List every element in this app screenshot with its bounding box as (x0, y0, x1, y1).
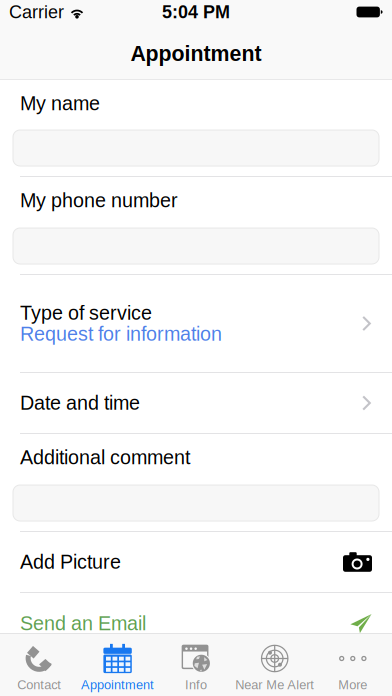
staticText: My name (20, 92, 100, 114)
button[interactable]: Contact (0, 633, 78, 696)
staticText: Request for information (20, 323, 222, 345)
staticText: Contact (17, 678, 61, 692)
button[interactable]: Add Picture (0, 532, 392, 592)
staticText: Send an Email (20, 612, 146, 634)
button[interactable]: Send an Email (0, 593, 392, 654)
button[interactable]: Appointment (78, 633, 157, 696)
button[interactable]: More (314, 633, 392, 696)
button[interactable]: Near Me Alert (235, 633, 314, 696)
staticText: Add Picture (20, 551, 121, 573)
button[interactable]: Type of service (0, 275, 392, 372)
button[interactable]: Info (157, 633, 235, 696)
staticText: Date and time (20, 392, 140, 414)
staticText: More (338, 678, 367, 692)
staticText: Appointment (130, 42, 261, 65)
staticText: My phone number (20, 189, 178, 211)
staticText: Carrier (9, 2, 64, 22)
staticText: Info (185, 678, 207, 692)
staticText: 5:04 PM (162, 2, 230, 22)
staticText: Type of service (20, 302, 152, 324)
staticText: Additional comment (20, 446, 190, 468)
button[interactable]: Date and time (0, 373, 392, 433)
staticText: Appointment (81, 678, 154, 692)
staticText: Near Me Alert (235, 678, 314, 692)
